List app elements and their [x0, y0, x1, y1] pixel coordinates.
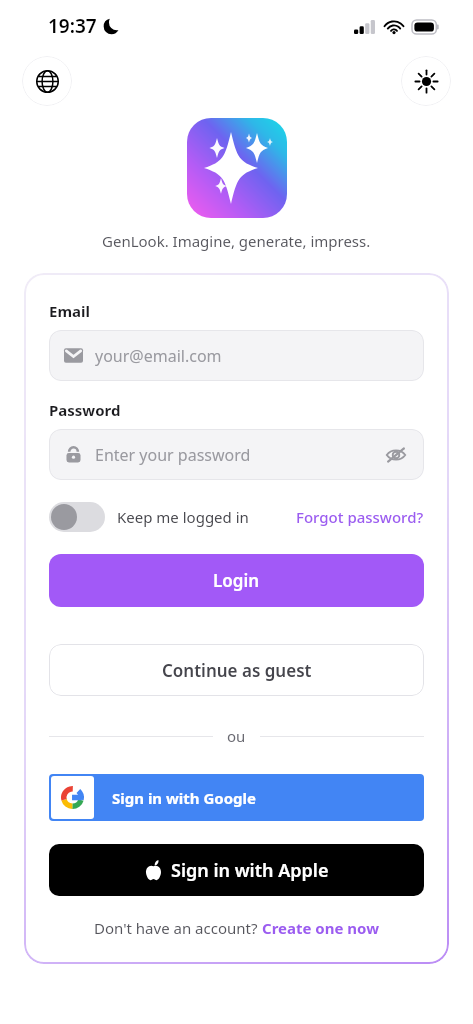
button[interactable]: Language: [22, 56, 72, 106]
staticText: Email: [49, 301, 90, 321]
staticText: Continue as guest: [162, 659, 312, 682]
button[interactable]: Enter your password: [49, 429, 424, 480]
button[interactable]: Toggle theme: [401, 56, 451, 106]
button[interactable]: Login: [49, 554, 424, 607]
staticText: Keep me logged in: [117, 507, 249, 527]
staticText: Login: [213, 569, 260, 592]
staticText: Enter your password: [95, 444, 383, 466]
staticText: Sign in with Google: [112, 788, 257, 808]
button[interactable]: Sign in with Google: [49, 774, 424, 821]
button[interactable]: Create one now: [262, 918, 379, 938]
staticText: 19:37: [48, 13, 97, 39]
staticText: Don't have an account?: [94, 918, 262, 938]
button[interactable]: Continue as guest: [49, 644, 424, 696]
staticText: Forgot password?: [296, 507, 424, 527]
button[interactable]: Show password: [383, 442, 409, 468]
button[interactable]: Sign in with Apple: [49, 844, 424, 896]
button[interactable]: your@email.com: [49, 330, 424, 381]
button[interactable]: Keep me logged in: [49, 502, 249, 532]
staticText: Create one now: [262, 918, 379, 938]
staticText: Password: [49, 400, 121, 420]
staticText: Sign in with Apple: [171, 858, 329, 883]
staticText: your@email.com: [95, 345, 409, 367]
staticText: ou: [227, 726, 246, 746]
staticText: GenLook. Imagine, generate, impress.: [102, 231, 371, 251]
button[interactable]: Forgot password?: [296, 507, 424, 527]
